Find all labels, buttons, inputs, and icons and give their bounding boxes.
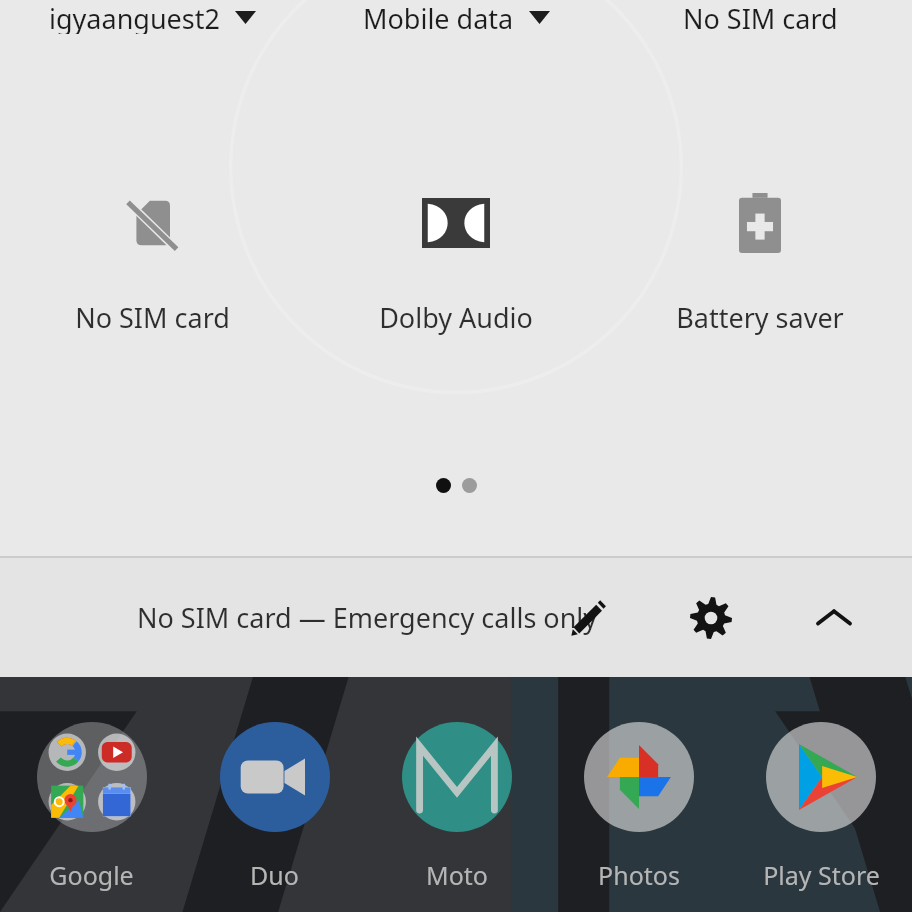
staticText: Duo bbox=[250, 858, 299, 892]
staticText: igyaanguest2 bbox=[49, 0, 220, 34]
button[interactable]: Collapse bbox=[800, 584, 868, 652]
button[interactable]: Dolby Audio bbox=[304, 185, 608, 336]
button[interactable]: Duo bbox=[183, 677, 366, 892]
staticText: Mobile data bbox=[363, 0, 514, 34]
button[interactable]: Mobile data bbox=[304, 0, 608, 34]
staticText: Moto bbox=[426, 858, 488, 892]
button[interactable]: Moto bbox=[366, 677, 548, 892]
button[interactable]: No SIM card bbox=[0, 185, 304, 336]
staticText: Battery saver bbox=[676, 299, 844, 336]
button[interactable]: Edit tiles bbox=[555, 584, 623, 652]
button[interactable]: Settings bbox=[677, 584, 745, 652]
button[interactable]: Photos bbox=[548, 677, 730, 892]
staticText: No SIM card bbox=[75, 299, 230, 336]
staticText: Photos bbox=[598, 858, 680, 892]
staticText: Play Store bbox=[763, 858, 880, 892]
staticText: No SIM card — Emergency calls only bbox=[137, 599, 598, 636]
staticText: Dolby Audio bbox=[379, 299, 533, 336]
button[interactable]: Battery saver bbox=[608, 185, 912, 336]
button[interactable]: No SIM card bbox=[608, 0, 912, 34]
button[interactable]: igyaanguest2 bbox=[0, 0, 304, 34]
button[interactable]: Google bbox=[0, 677, 183, 892]
staticText: No SIM card bbox=[683, 0, 838, 34]
button[interactable]: Play Store bbox=[730, 677, 912, 892]
staticText: Google bbox=[49, 858, 134, 892]
